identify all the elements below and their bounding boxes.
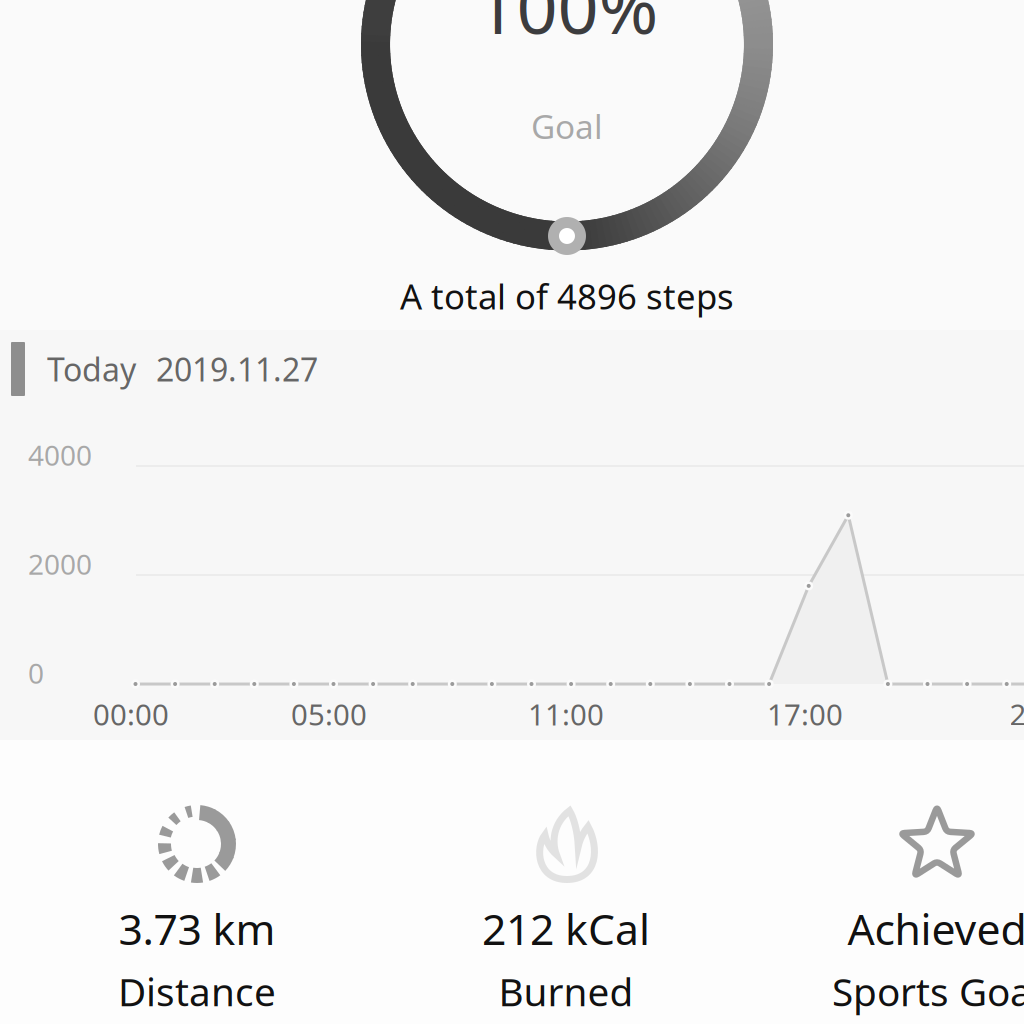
staticText: 00:00 — [93, 694, 169, 733]
staticText: 212 kCal — [482, 900, 650, 957]
button[interactable]: Achieved — [787, 795, 1024, 1017]
staticText: 2000 — [28, 545, 92, 583]
staticText: 2019.11.27 — [156, 348, 318, 390]
staticText: Distance — [118, 966, 276, 1017]
staticText: Sports Goal — [832, 966, 1024, 1017]
staticText: 0 — [28, 654, 44, 692]
staticText: 05:00 — [291, 694, 367, 733]
staticText: A total of 4896 steps — [400, 273, 734, 319]
staticText: 4000 — [28, 436, 92, 474]
staticText: Goal — [531, 104, 603, 148]
staticText: 2 — [1009, 694, 1024, 733]
staticText: 11:00 — [528, 694, 604, 733]
staticText: 100% — [475, 0, 658, 54]
button[interactable]: 3.73 km — [47, 795, 347, 1017]
staticText: Today — [47, 348, 136, 390]
staticText: 17:00 — [767, 694, 843, 733]
staticText: Achieved — [847, 900, 1024, 957]
staticText: 3.73 km — [118, 900, 275, 957]
button[interactable]: 212 kCal — [416, 795, 716, 1017]
staticText: Burned — [498, 966, 633, 1017]
